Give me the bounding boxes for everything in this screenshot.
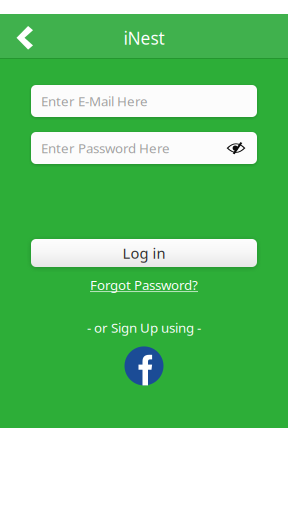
button[interactable]: Sign up with Facebook [124,346,163,385]
button[interactable]: Forgot Password? [90,276,198,294]
staticText: iNest [123,26,164,49]
staticText: - or Sign Up using - [87,319,201,336]
staticText: Enter Password Here [41,139,170,157]
staticText: Enter E-Mail Here [41,92,148,110]
button[interactable]: Back [0,14,46,58]
button[interactable]: Log in [0,239,288,267]
staticText: Log in [122,243,165,263]
staticText: Forgot Password? [90,276,198,294]
